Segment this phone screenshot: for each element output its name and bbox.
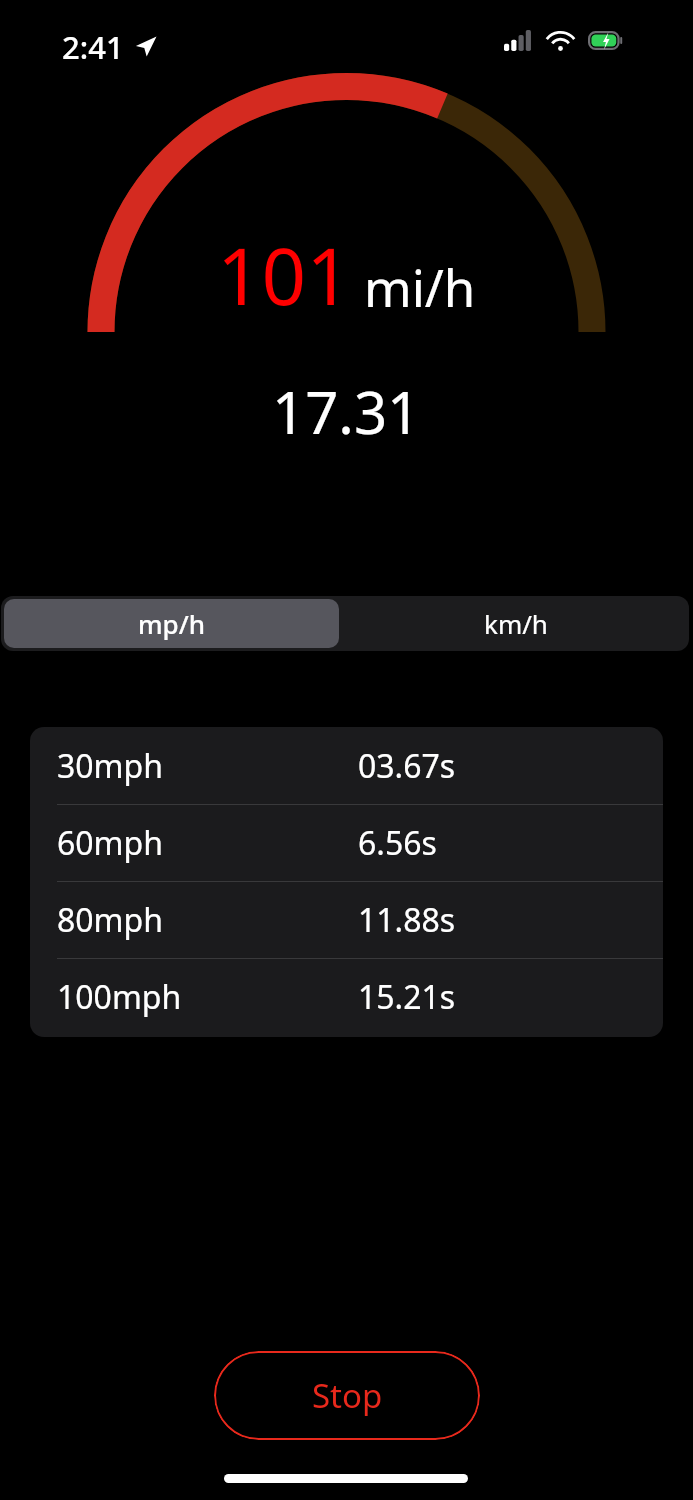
staticText: mi/h	[364, 252, 476, 321]
staticText: 60mph	[57, 821, 163, 865]
button[interactable]: mp/h	[4, 599, 339, 648]
button[interactable]: 100mph	[30, 958, 663, 1035]
staticText: 80mph	[57, 898, 163, 942]
other: Home indicator	[224, 1474, 468, 1483]
button[interactable]: Stop	[214, 1351, 480, 1440]
staticText: mp/h	[138, 606, 206, 641]
staticText: 101	[217, 222, 351, 328]
staticText: km/h	[484, 606, 548, 641]
staticText: 2:41	[62, 26, 124, 68]
staticText: 17.31	[272, 372, 421, 451]
button[interactable]: 80mph	[30, 881, 663, 958]
staticText: 30mph	[57, 744, 163, 788]
button[interactable]: 30mph	[30, 727, 663, 804]
button[interactable]: km/h	[342, 596, 689, 651]
staticText: Stop	[312, 1373, 383, 1418]
staticText: 11.88s	[358, 898, 456, 942]
staticText: 100mph	[57, 975, 182, 1019]
staticText: 03.67s	[358, 744, 456, 788]
staticText: 15.21s	[358, 975, 456, 1019]
staticText: 6.56s	[358, 821, 437, 865]
button[interactable]: 60mph	[30, 804, 663, 881]
